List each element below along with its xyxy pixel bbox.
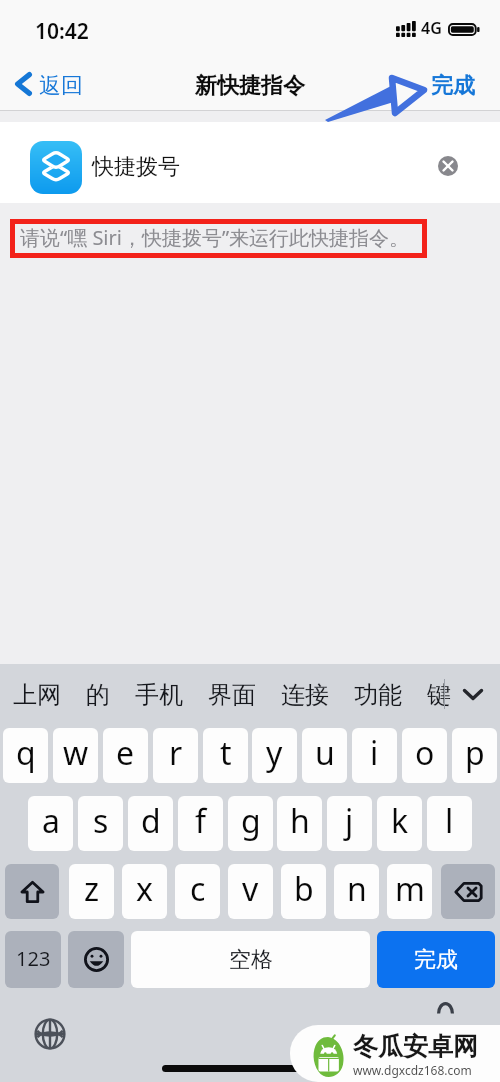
staticText: f	[195, 799, 207, 843]
staticText: z	[84, 867, 100, 911]
staticText: 123	[16, 945, 51, 972]
button[interactable]: v	[228, 864, 273, 919]
button[interactable]: 完成	[377, 931, 495, 988]
staticText: v	[242, 867, 259, 911]
staticText: g	[241, 799, 261, 843]
staticText: d	[141, 799, 161, 843]
staticText: 返回	[39, 72, 83, 100]
button[interactable]: z	[69, 864, 114, 919]
button[interactable]: 功能	[347, 664, 409, 724]
button[interactable]: d	[128, 796, 173, 851]
staticText: m	[395, 867, 425, 911]
staticText: t	[220, 731, 232, 775]
button[interactable]: Emoji	[68, 931, 124, 988]
button[interactable]: 空格	[131, 931, 370, 988]
staticText: 新快捷指令	[195, 72, 305, 100]
staticText: n	[347, 867, 367, 911]
staticText: i	[370, 731, 379, 775]
staticText: c	[190, 867, 206, 911]
staticText: 请说“嘿 Siri，快捷拨号”来运行此快捷指令。	[20, 224, 410, 251]
staticText: 键	[427, 680, 451, 710]
button[interactable]: Backspace	[441, 864, 495, 919]
button[interactable]: t	[203, 728, 248, 783]
button[interactable]: 手机	[128, 664, 190, 724]
staticText: a	[42, 799, 60, 843]
button[interactable]: 界面	[201, 664, 263, 724]
button[interactable]: o	[402, 728, 447, 783]
staticText: o	[415, 731, 435, 775]
button[interactable]: 快捷拨号	[0, 122, 500, 203]
staticText: www.dgxcdz168.com	[353, 1062, 472, 1078]
staticText: k	[391, 799, 409, 843]
staticText: 连接	[281, 680, 329, 710]
button[interactable]: u	[302, 728, 347, 783]
staticText: 快捷拨号	[92, 153, 180, 181]
button[interactable]: x	[122, 864, 167, 919]
button[interactable]: Shift	[5, 864, 59, 919]
staticText: 4G	[421, 17, 442, 39]
staticText: 冬瓜安卓网	[353, 1031, 478, 1062]
button[interactable]: 连接	[274, 664, 336, 724]
button[interactable]: 上网	[6, 664, 68, 724]
button[interactable]: Numbers	[5, 931, 61, 988]
button[interactable]: n	[334, 864, 379, 919]
staticText: 手机	[135, 680, 183, 710]
button[interactable]: a	[28, 796, 73, 851]
staticText: 界面	[208, 680, 256, 710]
staticText: r	[169, 731, 183, 775]
button[interactable]: y	[252, 728, 297, 783]
button[interactable]: w	[53, 728, 98, 783]
button[interactable]: p	[452, 728, 497, 783]
staticText: x	[136, 867, 153, 911]
button[interactable]: k	[377, 796, 422, 851]
staticText: y	[266, 731, 283, 775]
button[interactable]: e	[103, 728, 148, 783]
button[interactable]: g	[228, 796, 273, 851]
button[interactable]: i	[352, 728, 397, 783]
button[interactable]: 返回	[0, 62, 95, 106]
staticText: 空格	[229, 946, 273, 974]
button[interactable]: 完成	[415, 62, 500, 106]
staticText: l	[445, 799, 454, 843]
button[interactable]: j	[327, 796, 372, 851]
button[interactable]: s	[78, 796, 123, 851]
button[interactable]: r	[153, 728, 198, 783]
staticText: e	[116, 731, 135, 775]
staticText: s	[93, 799, 109, 843]
staticText: h	[290, 799, 310, 843]
staticText: 完成	[431, 72, 475, 100]
staticText: 的	[86, 680, 110, 710]
button[interactable]: q	[3, 728, 48, 783]
button[interactable]: b	[281, 864, 326, 919]
staticText: 功能	[354, 680, 402, 710]
button[interactable]: h	[277, 796, 322, 851]
staticText: u	[315, 731, 335, 775]
staticText: b	[294, 867, 314, 911]
staticText: j	[345, 799, 354, 843]
button[interactable]: m	[387, 864, 432, 919]
staticText: 上网	[13, 680, 61, 710]
button[interactable]: c	[175, 864, 220, 919]
staticText: p	[465, 731, 485, 775]
button[interactable]: Clear	[421, 138, 500, 194]
button[interactable]: 键	[420, 664, 458, 724]
staticText: 10:42	[35, 17, 89, 46]
button[interactable]: Switch language	[34, 1018, 66, 1050]
staticText: q	[16, 731, 36, 775]
button[interactable]: Hide keyboard	[446, 664, 500, 724]
button[interactable]: l	[427, 796, 472, 851]
staticText: w	[63, 731, 89, 775]
button[interactable]: f	[178, 796, 223, 851]
button[interactable]: 的	[79, 664, 117, 724]
staticText: 完成	[414, 946, 458, 974]
